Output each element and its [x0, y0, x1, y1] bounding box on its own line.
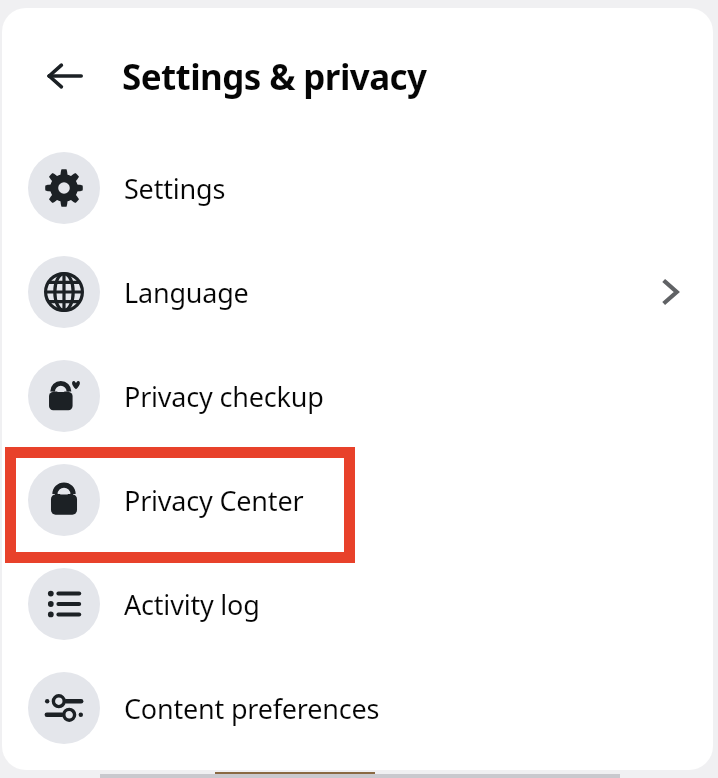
staticText: Privacy checkup [124, 378, 324, 415]
staticText: Language [124, 274, 249, 311]
button[interactable]: Privacy checkup [10, 344, 708, 448]
staticText: Content preferences [124, 690, 380, 727]
button[interactable]: Back [33, 44, 97, 108]
button[interactable]: Settings [10, 136, 708, 240]
staticText: Settings & privacy [122, 53, 427, 101]
button[interactable]: Privacy Center [10, 448, 708, 552]
button[interactable]: Activity log [10, 552, 708, 656]
staticText: Privacy Center [124, 482, 304, 519]
staticText: Settings [124, 170, 226, 207]
button[interactable]: Content preferences [10, 656, 708, 760]
staticText: Activity log [124, 586, 260, 623]
button[interactable]: Language [10, 240, 708, 344]
